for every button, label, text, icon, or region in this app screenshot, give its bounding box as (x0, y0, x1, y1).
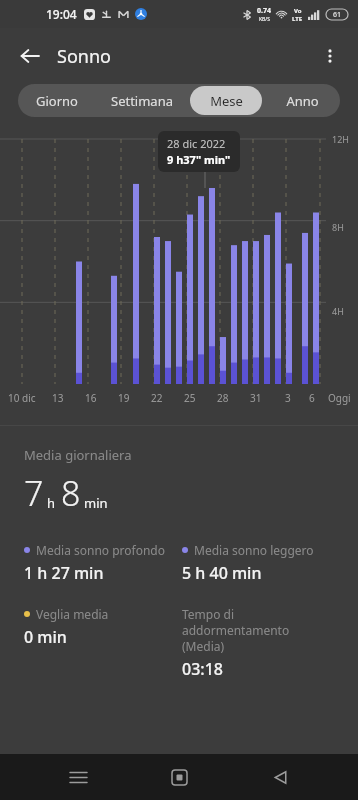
staticText: Media sonno leggero (194, 542, 314, 558)
staticText: Media giornaliera (24, 446, 132, 464)
button[interactable]: Recent apps (55, 754, 101, 800)
staticText: 8 (61, 470, 81, 516)
staticText: 10 dic (8, 391, 36, 405)
button[interactable]: Media sonno leggero (182, 542, 340, 584)
staticText: 6 (309, 391, 315, 405)
button[interactable]: Anno (266, 86, 338, 115)
staticText: 28 (217, 391, 229, 405)
staticText: 8H (332, 221, 344, 233)
staticText: Settimana (111, 92, 173, 110)
staticText: LTE (292, 15, 303, 23)
staticText: 5 h 40 min (182, 562, 262, 584)
staticText: Sonno (57, 44, 111, 69)
button[interactable]: Veglia media (24, 606, 182, 648)
staticText: 3 (285, 391, 291, 405)
button[interactable]: Back (10, 36, 50, 76)
staticText: 1 h 27 min (24, 562, 104, 584)
staticText: 16 (85, 391, 97, 405)
staticText: 13 (52, 391, 64, 405)
staticText: 03:18 (182, 658, 223, 680)
staticText: 0.74 (257, 6, 271, 16)
staticText: Oggi (328, 391, 351, 405)
staticText: 9 h37" min" (167, 152, 231, 167)
staticText: Tempo di addormentamento (182, 606, 340, 638)
staticText: Vo (294, 7, 302, 15)
staticText: KB/S (259, 16, 270, 23)
staticText: 4H (332, 305, 344, 317)
staticText: Veglia media (36, 606, 109, 622)
staticText: Media sonno profondo (36, 542, 166, 558)
staticText: 19:04 (46, 6, 77, 22)
staticText: 19 (118, 391, 130, 405)
staticText: 22 (151, 391, 163, 405)
staticText: 0 min (24, 626, 67, 648)
button[interactable]: More options (310, 36, 350, 76)
staticText: 31 (250, 391, 262, 405)
staticText: (Media) (182, 638, 225, 654)
button[interactable]: Settimana (97, 86, 186, 115)
button[interactable]: Back (257, 754, 303, 800)
staticText: 25 (184, 391, 196, 405)
staticText: h (47, 494, 56, 512)
button[interactable]: Home (156, 754, 202, 800)
staticText: min (84, 494, 108, 512)
button[interactable]: Mese (190, 86, 262, 115)
staticText: 7 (24, 470, 44, 516)
staticText: 12H (332, 133, 349, 145)
staticText: Giorno (36, 92, 78, 110)
staticText: 28 dic 2022 (167, 136, 226, 151)
staticText: Mese (210, 92, 243, 110)
staticText: 61 (333, 10, 342, 20)
button[interactable]: Giorno (20, 86, 93, 115)
staticText: Anno (286, 92, 319, 110)
button[interactable]: Media sonno profondo (24, 542, 182, 584)
